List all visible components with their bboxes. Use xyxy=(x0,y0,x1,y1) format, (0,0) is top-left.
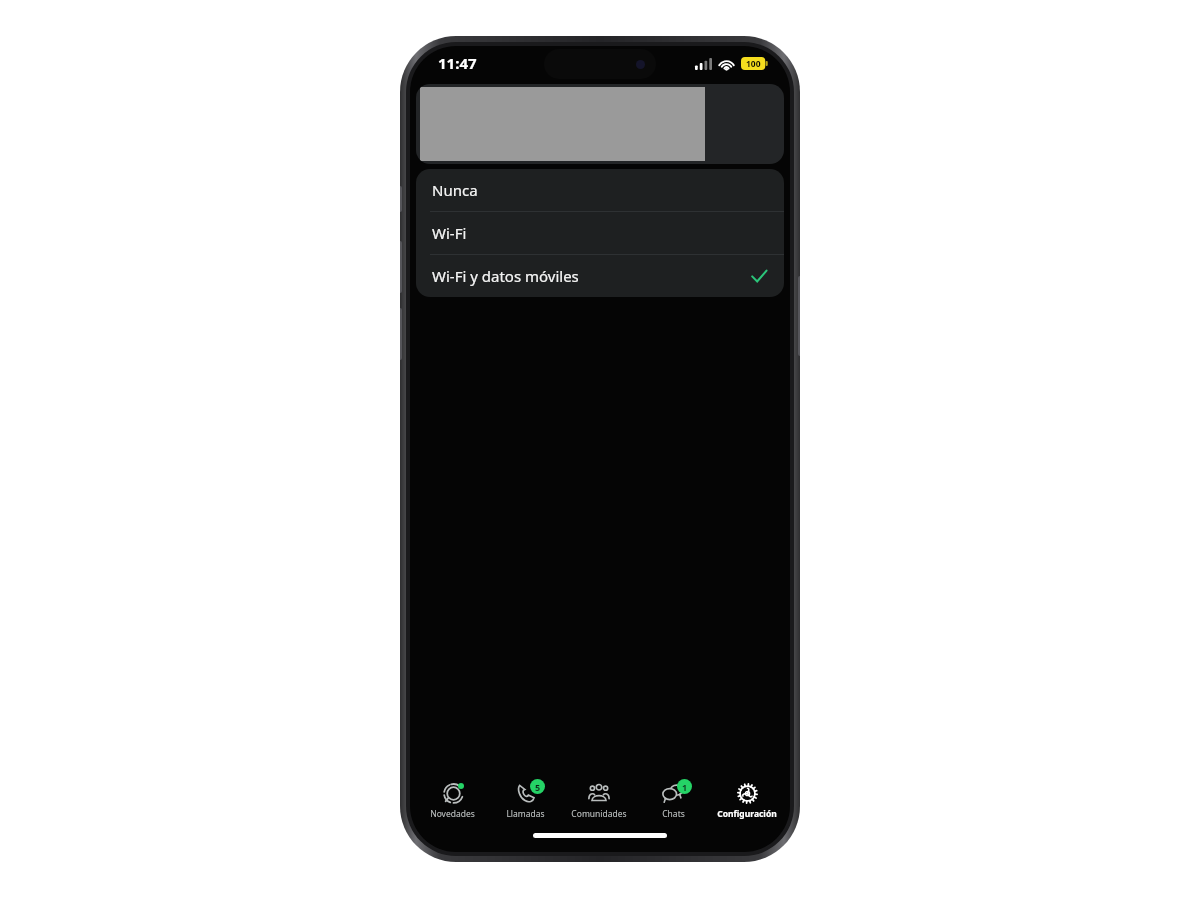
other: Comunidades xyxy=(588,782,610,804)
staticText: Comunidades xyxy=(571,808,627,820)
staticText: Novedades xyxy=(430,808,475,820)
staticText: Nunca xyxy=(432,180,478,200)
staticText: Wi-Fi y datos móviles xyxy=(432,266,579,286)
staticText: Chats xyxy=(662,808,685,820)
staticText: Configuración xyxy=(717,808,777,820)
other: Llamadas xyxy=(516,783,536,803)
staticText: 1 xyxy=(682,781,688,793)
staticText: 5 xyxy=(535,781,541,793)
button[interactable]: Wi-Fi xyxy=(416,212,784,254)
staticText: 100 xyxy=(746,58,761,70)
button[interactable]: Nunca xyxy=(416,169,784,211)
other: Configuración xyxy=(737,783,758,804)
staticText: Llamadas xyxy=(506,808,545,820)
staticText: 11:47 xyxy=(438,53,477,73)
button[interactable]: Chats xyxy=(636,776,710,826)
other: Chats xyxy=(662,782,684,804)
other: Novedades xyxy=(443,783,464,804)
button[interactable]: Comunidades xyxy=(562,776,636,826)
button[interactable]: Llamadas xyxy=(489,776,562,826)
button[interactable]: Wi-Fi y datos móviles xyxy=(416,255,784,297)
button[interactable]: Novedades xyxy=(416,776,489,826)
staticText: Wi-Fi xyxy=(432,223,467,243)
button[interactable]: Configuración xyxy=(710,776,784,826)
